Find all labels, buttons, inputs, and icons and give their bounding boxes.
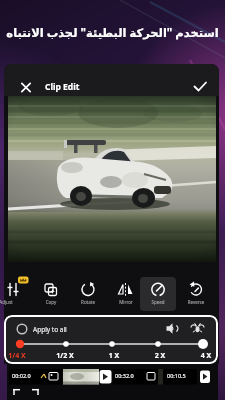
button[interactable]: 4 X	[191, 351, 221, 361]
staticText: Apply to all	[33, 325, 67, 334]
staticText: استخدم "الحركة البطيئة" لجذب الانتباه	[0, 25, 225, 41]
staticText: Adjust	[0, 299, 21, 305]
staticText: Mirror	[111, 299, 141, 305]
button[interactable]	[12, 320, 92, 338]
button[interactable]	[110, 276, 142, 310]
button[interactable]	[72, 276, 104, 310]
button[interactable]	[188, 318, 208, 338]
button[interactable]: 1 X	[99, 351, 129, 361]
button[interactable]	[35, 276, 67, 310]
staticText: Clip Edit	[45, 81, 80, 93]
staticText: Rotate	[73, 299, 103, 305]
button[interactable]	[16, 77, 37, 98]
staticText: Reverse	[181, 299, 211, 305]
button[interactable]	[190, 76, 212, 98]
button[interactable]: 1/2 X	[50, 351, 80, 361]
button[interactable]: 1/4 X	[2, 351, 32, 361]
button[interactable]: 00:10.5	[167, 372, 186, 379]
staticText: Speed	[143, 299, 173, 305]
button[interactable]: 00:32.0	[115, 372, 134, 379]
button[interactable]	[180, 276, 212, 310]
button[interactable]	[142, 276, 174, 310]
button[interactable]	[140, 277, 176, 311]
staticText: Copy	[36, 299, 66, 305]
button[interactable]: 00:02.0	[12, 372, 31, 379]
button[interactable]	[164, 318, 184, 338]
button[interactable]: 2 X	[145, 351, 175, 361]
button[interactable]	[0, 276, 29, 310]
